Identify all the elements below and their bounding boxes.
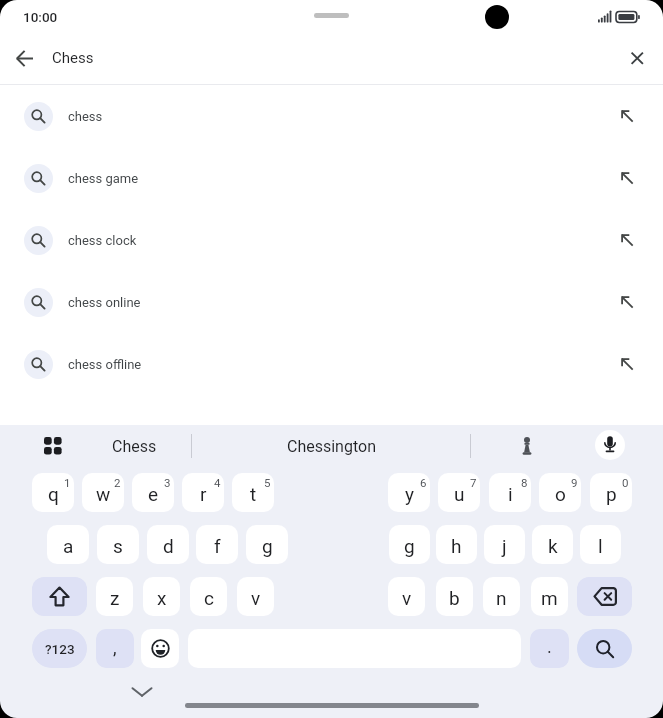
staticText: l [598,535,603,557]
button[interactable]: g [389,525,430,564]
button[interactable]: chess online [0,271,663,333]
button[interactable]: Chessington [200,427,462,465]
staticText: ?123 [45,641,75,657]
staticText: e [148,483,159,505]
button[interactable]: c [190,577,227,616]
staticText: u [454,483,465,505]
staticText: Chess [112,437,157,456]
staticText: 1 [64,476,71,489]
staticText: y [405,483,414,505]
button[interactable]: r [182,473,224,512]
staticText: z [110,587,120,609]
staticText: g [262,535,273,557]
staticText: 7 [470,476,477,489]
staticText: b [449,587,460,609]
button[interactable]: g [246,525,288,564]
staticText: , [113,637,117,658]
button[interactable] [623,44,651,72]
staticText: 2 [114,476,121,489]
button[interactable] [577,629,632,668]
button[interactable] [510,429,544,463]
staticText: 9 [571,476,578,489]
staticText: o [555,483,566,505]
button[interactable]: t [232,473,274,512]
button[interactable]: h [436,525,477,564]
button[interactable]: f [196,525,238,564]
staticText: 0 [622,476,629,489]
button[interactable]: d [147,525,189,564]
button[interactable] [577,577,632,616]
staticText: g [404,535,415,557]
button[interactable]: i [489,473,531,512]
staticText: p [606,483,617,505]
staticText: k [548,535,558,557]
staticText: 6 [420,476,427,489]
button[interactable]: b [436,577,473,616]
staticText: chess offline [68,357,142,372]
staticText: r [200,483,207,505]
staticText: m [541,587,558,609]
staticText: . [547,636,552,657]
button[interactable] [36,429,70,463]
staticText: h [451,535,462,557]
staticText: d [163,535,174,557]
staticText: 10:00 [23,9,58,25]
button[interactable]: ?123 [32,629,87,668]
staticText: chess game [68,171,139,186]
staticText: t [250,483,257,505]
staticText: 4 [214,476,221,489]
staticText: 3 [164,476,171,489]
staticText: v [402,587,412,609]
staticText: 8 [521,476,528,489]
button[interactable] [32,577,87,616]
button[interactable]: p [590,473,632,512]
button[interactable] [141,629,179,668]
staticText: f [214,535,221,557]
staticText: chess clock [68,233,137,248]
button[interactable]: n [483,577,520,616]
button[interactable] [595,430,625,460]
staticText: x [157,587,167,609]
button[interactable] [10,50,42,76]
button[interactable]: y [388,473,430,512]
button[interactable]: a [47,525,89,564]
button[interactable]: o [539,473,581,512]
staticText: s [113,535,123,557]
button[interactable]: . [530,629,569,668]
staticText: v [251,587,261,609]
staticText: w [96,483,111,505]
staticText: chess online [68,295,141,310]
button[interactable]: j [484,525,525,564]
button[interactable] [124,680,160,704]
button[interactable]: chess clock [0,209,663,271]
button[interactable]: chess [0,85,663,147]
button[interactable]: v [388,577,425,616]
button[interactable]: e [132,473,174,512]
staticText: 5 [264,476,271,489]
staticText: i [508,483,513,505]
staticText: Chessington [287,437,376,456]
button[interactable]: m [531,577,568,616]
button[interactable]: x [143,577,180,616]
button[interactable]: k [532,525,573,564]
staticText: c [204,587,214,609]
button[interactable]: q [32,473,74,512]
button[interactable]: u [438,473,480,512]
staticText: Chess [52,49,94,67]
button[interactable]: l [580,525,621,564]
staticText: n [496,587,507,609]
button[interactable]: , [96,629,134,668]
staticText: j [502,535,507,557]
button[interactable]: w [82,473,124,512]
button[interactable]: z [96,577,133,616]
button[interactable]: v [237,577,274,616]
button[interactable]: chess game [0,147,663,209]
staticText: chess [68,109,103,124]
button[interactable]: Chess [80,427,188,465]
button[interactable]: s [97,525,139,564]
staticText: a [63,535,74,557]
staticText: q [48,483,59,505]
button[interactable]: chess offline [0,333,663,395]
